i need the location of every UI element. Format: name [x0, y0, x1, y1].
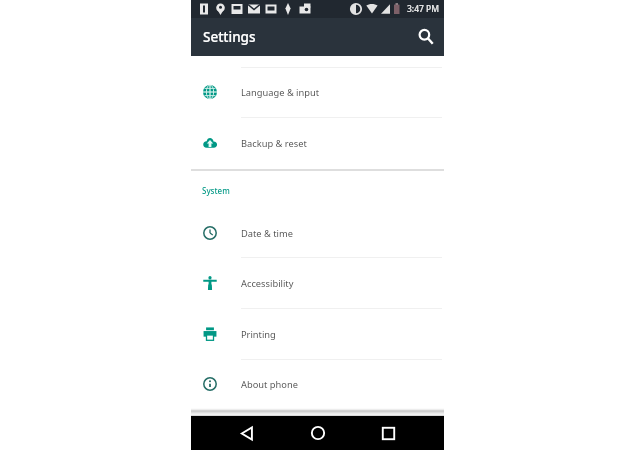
staticText: 3:47 PM: [407, 3, 440, 15]
button[interactable]: Language & input: [191, 69, 444, 115]
staticText: Settings: [203, 28, 256, 46]
button[interactable]: Search: [412, 23, 440, 51]
staticText: Date & time: [241, 227, 293, 240]
button[interactable]: Home: [296, 416, 340, 450]
staticText: Language & input: [241, 86, 320, 99]
button[interactable]: Back: [225, 416, 269, 450]
button[interactable]: About phone: [191, 361, 444, 407]
button[interactable]: Printing: [191, 311, 444, 357]
button[interactable]: Accessibility: [191, 260, 444, 306]
button[interactable]: Backup & reset: [191, 120, 444, 166]
button[interactable]: Recents: [366, 416, 410, 450]
staticText: About phone: [241, 378, 298, 391]
button[interactable]: Date & time: [191, 210, 444, 256]
staticText: Printing: [241, 328, 276, 341]
staticText: Accessibility: [241, 277, 294, 290]
staticText: System: [202, 185, 230, 196]
staticText: Backup & reset: [241, 137, 307, 150]
